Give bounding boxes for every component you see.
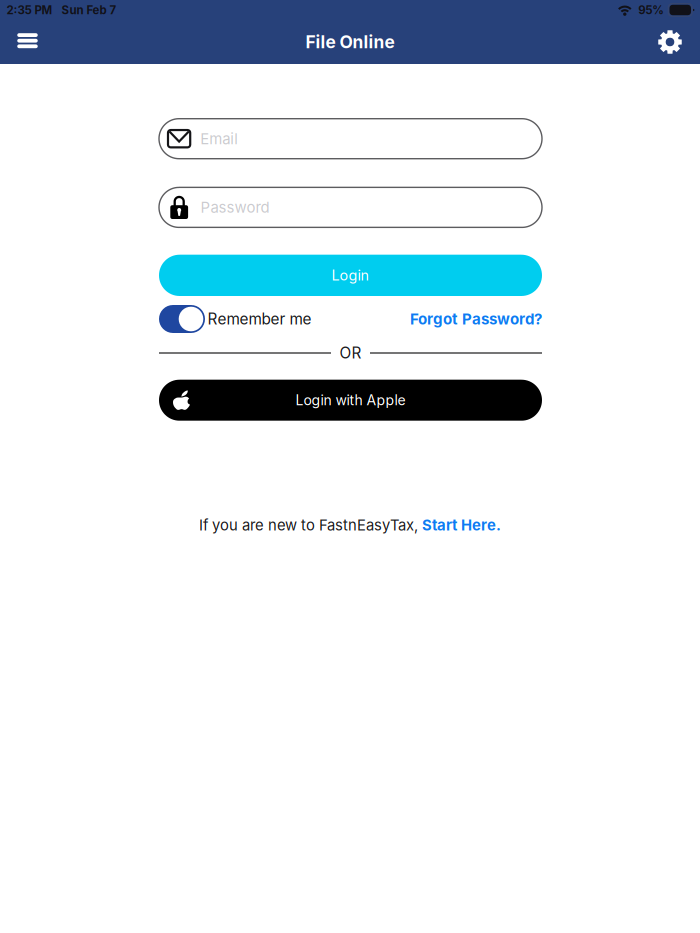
- staticText: Email: [200, 130, 238, 148]
- staticText: Start Here.: [422, 516, 501, 534]
- staticText: 2:35 PM: [6, 3, 52, 17]
- button[interactable]: Login: [159, 255, 542, 296]
- button[interactable]: Login with Apple: [159, 380, 542, 421]
- button[interactable]: Menu: [8, 20, 46, 64]
- button[interactable]: Password: [159, 187, 542, 227]
- staticText: Sun Feb 7: [61, 3, 116, 17]
- staticText: Login with Apple: [295, 392, 405, 409]
- staticText: If you are new to FastnEasyTax,: [199, 516, 422, 534]
- staticText: 95%: [638, 3, 664, 17]
- staticText: Login: [331, 267, 369, 284]
- button[interactable]: Forgot Password?: [392, 305, 542, 333]
- button[interactable]: Settings: [651, 20, 689, 64]
- staticText: OR: [339, 344, 361, 362]
- staticText: Password: [200, 198, 269, 216]
- button[interactable]: Remember me: [159, 305, 311, 333]
- staticText: Forgot Password?: [410, 310, 542, 328]
- staticText: Remember me: [207, 310, 311, 328]
- staticText: File Online: [305, 31, 394, 52]
- button[interactable]: Start Here.: [422, 516, 501, 534]
- button[interactable]: Email: [159, 119, 542, 159]
